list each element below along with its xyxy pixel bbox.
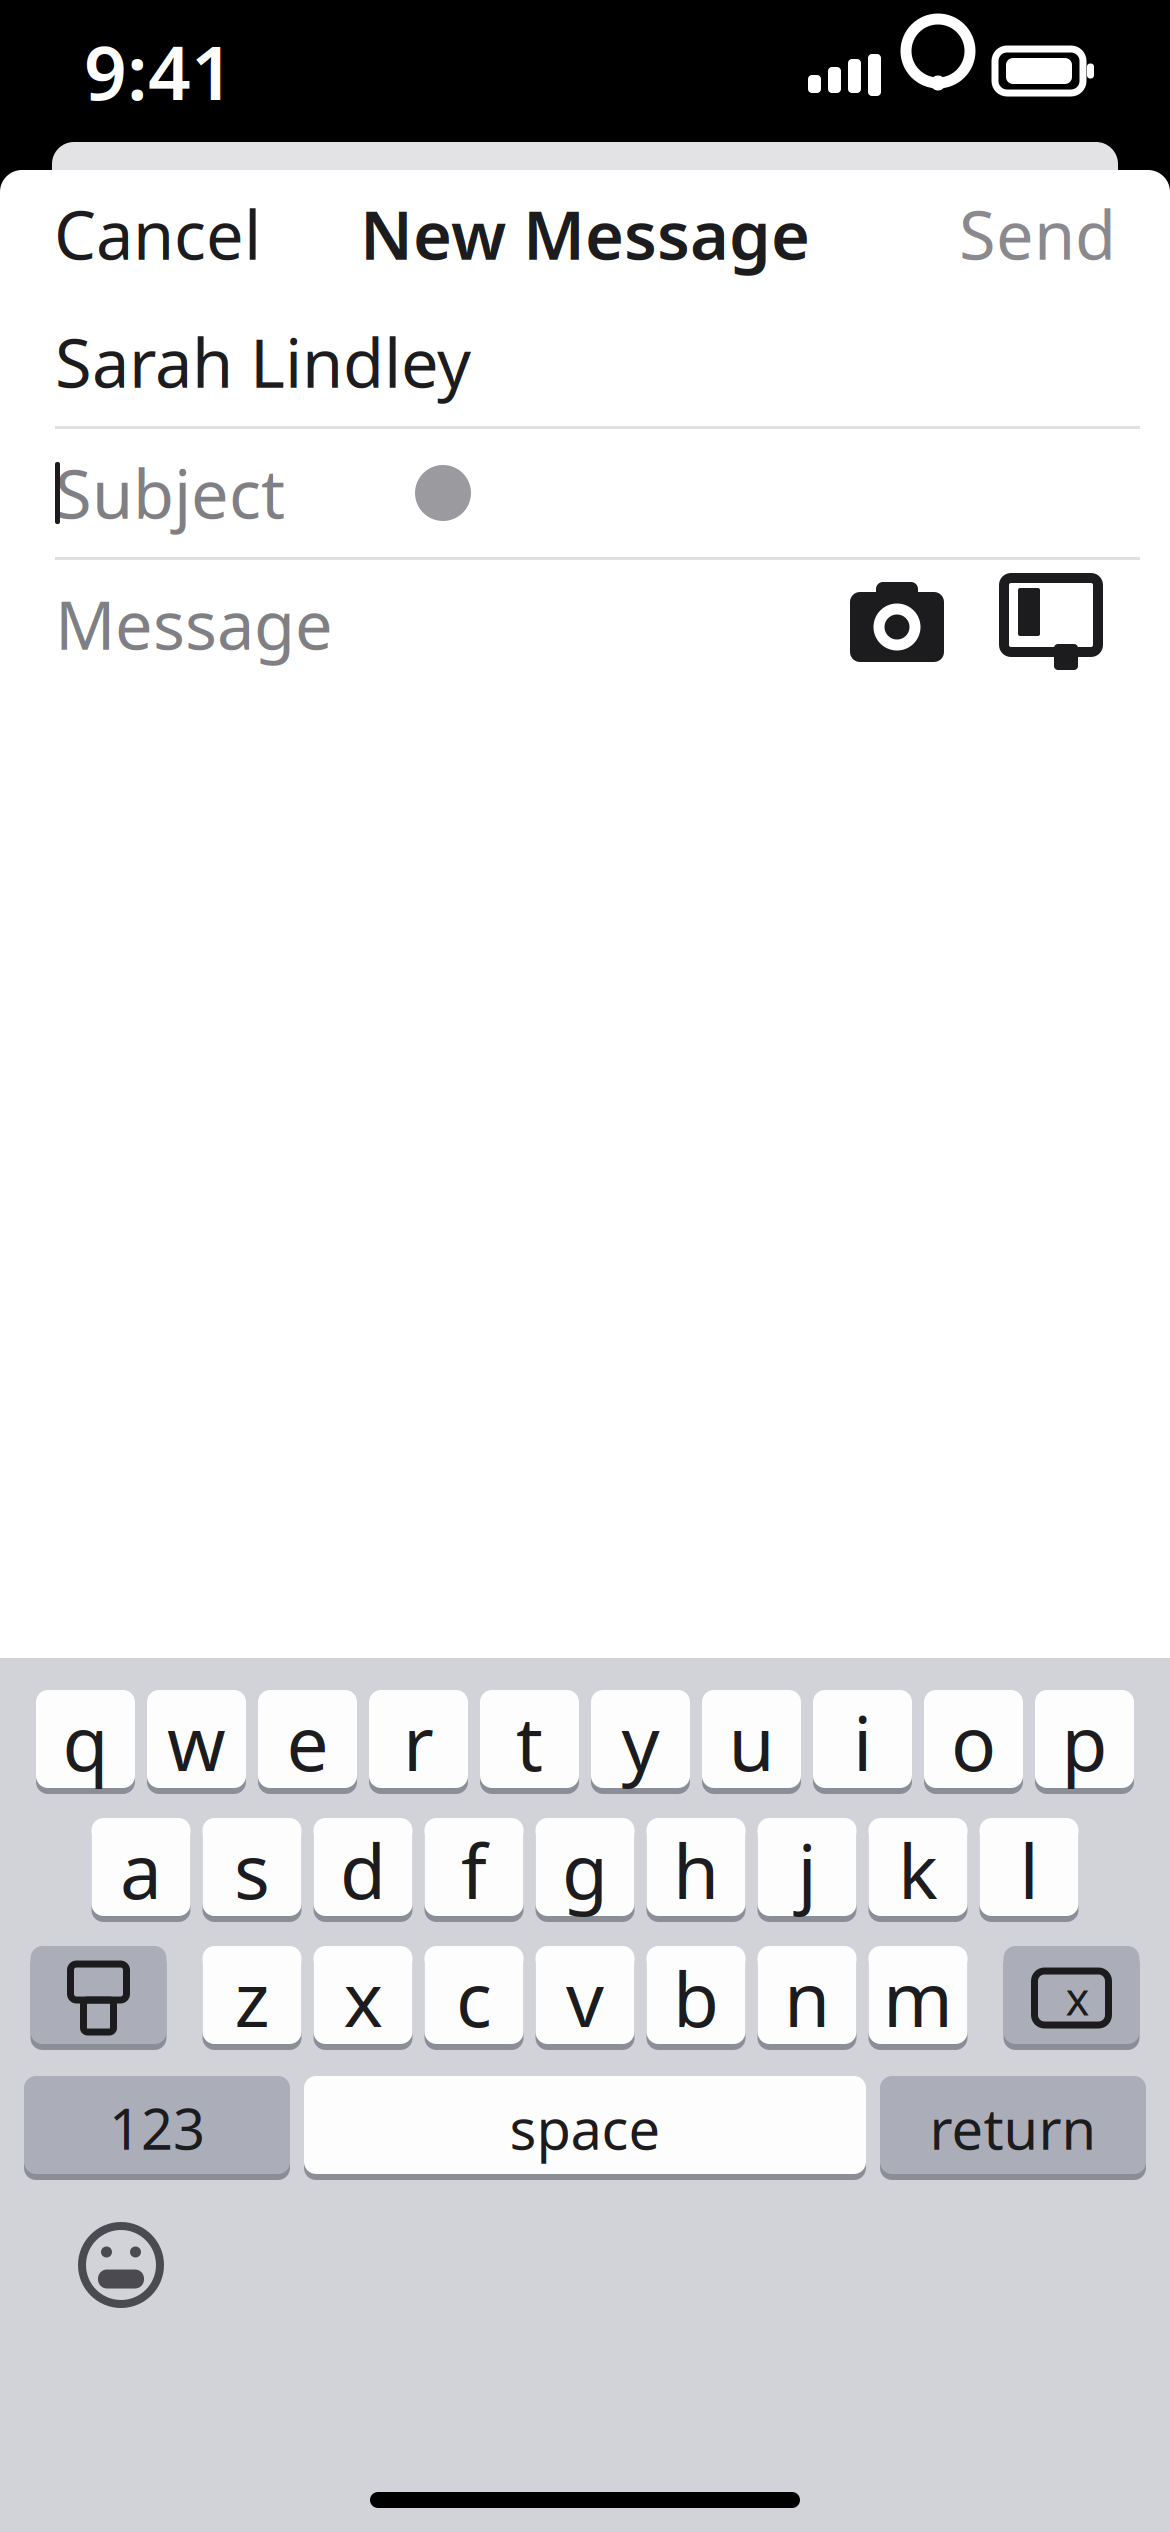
staticText: space [509, 2091, 660, 2165]
staticText: Cancel [54, 190, 261, 278]
button[interactable]: y [591, 1690, 690, 1794]
staticText: n [784, 1948, 830, 2048]
staticText: u [728, 1692, 774, 1792]
staticText: Subject [55, 449, 285, 537]
button[interactable]: e [258, 1690, 357, 1794]
staticText: j [797, 1820, 816, 1920]
button[interactable]: Digital Touch [974, 560, 1128, 688]
staticText: t [516, 1692, 543, 1792]
button[interactable]: h [646, 1818, 745, 1922]
button[interactable]: m [868, 1946, 967, 2050]
button[interactable]: o [924, 1690, 1023, 1794]
staticText: New Message [360, 190, 810, 278]
button[interactable]: w [147, 1690, 246, 1794]
staticText: i [853, 1692, 872, 1792]
button[interactable]: Subject [0, 429, 1170, 557]
staticText: f [461, 1820, 487, 1920]
staticText: x [1065, 1968, 1089, 2028]
button[interactable]: Take photo [820, 560, 974, 688]
staticText: p [1061, 1692, 1107, 1792]
button[interactable]: s [202, 1818, 301, 1922]
button[interactable]: Shift [30, 1946, 166, 2050]
button[interactable]: b [646, 1946, 745, 2050]
staticText: Sarah Lindley [55, 318, 471, 406]
staticText: w [167, 1692, 226, 1792]
button[interactable]: Message [55, 560, 820, 688]
button[interactable]: g [535, 1818, 634, 1922]
staticText: Send [959, 190, 1116, 278]
button[interactable]: 123 [24, 2076, 290, 2180]
button[interactable]: d [313, 1818, 412, 1922]
button[interactable]: x [313, 1946, 412, 2050]
button[interactable]: t [480, 1690, 579, 1794]
button[interactable]: q [36, 1690, 135, 1794]
staticText: c [456, 1948, 492, 2048]
staticText: l [1019, 1820, 1038, 1920]
staticText: o [951, 1692, 996, 1792]
button[interactable]: p [1035, 1690, 1134, 1794]
staticText: y [621, 1692, 659, 1792]
button[interactable]: Cancel [40, 170, 275, 298]
staticText: e [286, 1692, 328, 1792]
staticText: Message [55, 580, 333, 668]
staticText: g [562, 1820, 608, 1920]
staticText: x [343, 1948, 382, 2048]
button[interactable]: space [304, 2076, 866, 2180]
staticText: r [403, 1692, 434, 1792]
button[interactable]: n [757, 1946, 856, 2050]
staticText: z [234, 1948, 269, 2048]
button[interactable]: k [868, 1818, 967, 1922]
staticText: return [929, 2091, 1096, 2165]
button[interactable]: Emoji keyboard [62, 2204, 180, 2326]
button[interactable]: r [369, 1690, 468, 1794]
button[interactable]: i [813, 1690, 912, 1794]
staticText: a [120, 1820, 162, 1920]
button[interactable]: v [535, 1946, 634, 2050]
button[interactable]: j [757, 1818, 856, 1922]
staticText: 9:41 [84, 21, 234, 121]
button[interactable]: Sarah Lindley [0, 298, 1170, 426]
button[interactable]: z [202, 1946, 301, 2050]
staticText: s [234, 1820, 270, 1920]
staticText: m [883, 1948, 953, 2048]
staticText: b [673, 1948, 719, 2048]
button[interactable]: Send [945, 170, 1130, 298]
staticText: q [62, 1692, 108, 1792]
staticText: h [673, 1820, 719, 1920]
staticText: k [898, 1820, 938, 1920]
staticText: 123 [109, 2091, 205, 2165]
staticText: d [340, 1820, 386, 1920]
button[interactable]: a [91, 1818, 190, 1922]
button[interactable]: u [702, 1690, 801, 1794]
button[interactable]: Delete [1003, 1946, 1139, 2050]
button[interactable]: l [979, 1818, 1078, 1922]
button[interactable]: return [880, 2076, 1146, 2180]
staticText: v [566, 1948, 604, 2048]
button[interactable]: f [424, 1818, 523, 1922]
button[interactable]: c [424, 1946, 523, 2050]
